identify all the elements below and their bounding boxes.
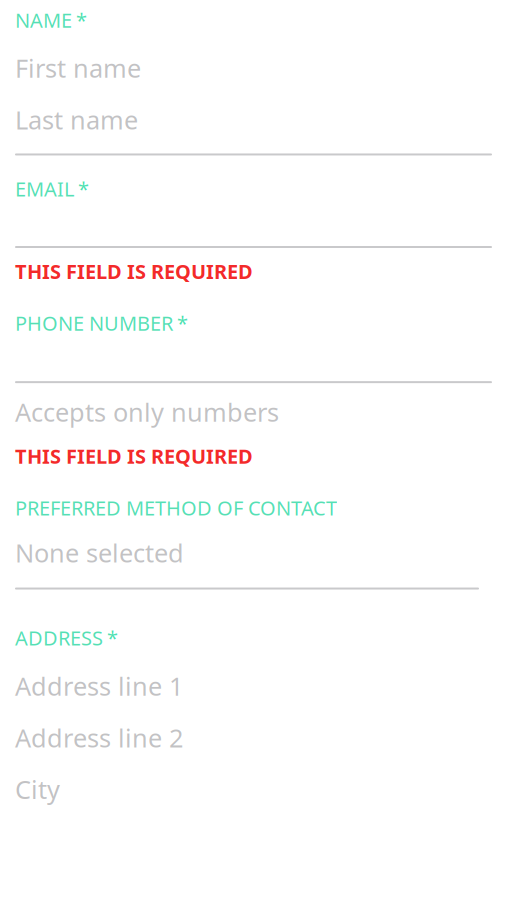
staticText: * xyxy=(107,625,118,651)
staticText: PHONE NUMBER xyxy=(15,310,173,336)
staticText: ADDRESS xyxy=(15,625,103,651)
staticText: None selected xyxy=(15,536,184,569)
staticText: THIS FIELD IS REQUIRED xyxy=(15,258,253,285)
staticText: * xyxy=(76,7,87,33)
staticText: * xyxy=(177,310,188,336)
staticText: * xyxy=(78,175,89,202)
staticText: Address line 2 xyxy=(15,721,183,754)
staticText: NAME xyxy=(15,7,72,33)
button[interactable]: None selected xyxy=(15,521,492,589)
staticText: Accepts only numbers xyxy=(15,395,279,429)
staticText: THIS FIELD IS REQUIRED xyxy=(15,443,253,469)
staticText: Last name xyxy=(15,103,138,136)
staticText: PREFERRED METHOD OF CONTACT xyxy=(15,494,337,521)
staticText: EMAIL xyxy=(15,175,74,202)
staticText: Address line 1 xyxy=(15,669,183,703)
staticText: City xyxy=(15,772,60,806)
staticText: First name xyxy=(15,51,141,85)
